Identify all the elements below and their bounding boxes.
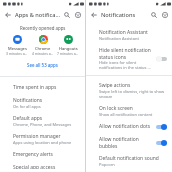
button[interactable]: On: [156, 139, 167, 146]
staticText: 7 minutes a…: [57, 51, 79, 56]
staticText: Popcorn: [99, 162, 115, 167]
button[interactable]: Off: [156, 55, 167, 62]
staticText: Notification Assistant: [99, 36, 139, 41]
staticText: Allow notification bubbles: [99, 136, 153, 149]
button[interactable]: Special app access: [0, 161, 85, 172]
staticText: Hide silent notification status icons: [99, 47, 153, 60]
staticText: On lock screen: [99, 105, 133, 112]
staticText: Notifications: [101, 11, 148, 19]
staticText: Hangouts: [59, 46, 78, 51]
staticText: Apps using location and phone: [13, 140, 72, 145]
button[interactable]: Messages: [5, 35, 29, 56]
button[interactable]: Permission manager: [0, 130, 85, 148]
staticText: Swipe actions: [99, 82, 131, 89]
button[interactable]: Default notification sound: [86, 152, 172, 170]
button[interactable]: Hide silent notification status icons: [86, 44, 172, 73]
staticText: Emergency alerts: [13, 151, 53, 158]
staticText: 4 minutes a…: [32, 51, 54, 56]
button[interactable]: Search: [148, 9, 159, 20]
staticText: Show all notification content: [99, 112, 153, 117]
staticText: Messages: [8, 46, 27, 51]
staticText: Permission manager: [13, 133, 61, 140]
staticText: Special app access: [13, 164, 56, 169]
staticText: Hide icons for silent notifications in t…: [99, 60, 153, 70]
staticText: 3 minutes a…: [6, 51, 28, 56]
staticText: See all 53 apps: [27, 62, 58, 68]
button[interactable]: Help: [72, 9, 83, 20]
button[interactable]: Notification Assistant: [86, 26, 172, 44]
button[interactable]: See all 53 apps: [0, 61, 85, 69]
button[interactable]: On: [156, 123, 167, 130]
button[interactable]: Back: [2, 9, 13, 20]
button[interactable]: Search: [61, 9, 72, 20]
button[interactable]: Chrome: [31, 35, 55, 56]
staticText: Notifications: [13, 97, 43, 104]
staticText: Default notification sound: [99, 155, 159, 162]
staticText: On for all apps: [13, 104, 41, 109]
staticText: Allow notification dots: [99, 123, 151, 130]
staticText: Recently opened apps: [20, 25, 66, 31]
staticText: Time spent in apps: [13, 84, 57, 91]
staticText: Apps & notifications: [15, 11, 61, 19]
button[interactable]: Swipe actions: [86, 79, 172, 102]
button[interactable]: Hangouts: [56, 35, 80, 56]
button[interactable]: Help: [159, 9, 170, 20]
button[interactable]: Emergency alerts: [0, 148, 85, 161]
button[interactable]: Allow notification dots: [86, 120, 172, 133]
button[interactable]: Allow notification bubbles: [86, 133, 172, 152]
button[interactable]: Notifications: [0, 94, 85, 112]
staticText: Chrome: [35, 46, 51, 51]
button[interactable]: Back: [88, 9, 99, 20]
staticText: Notification Assistant: [99, 29, 148, 36]
button[interactable]: On lock screen: [86, 102, 172, 120]
button[interactable]: Default apps: [0, 112, 85, 130]
staticText: Chrome, Phone, and Messages: [13, 122, 72, 127]
staticText: Swipe left to dismiss, right to show sno…: [99, 89, 167, 99]
button[interactable]: Time spent in apps: [0, 81, 85, 94]
staticText: Default apps: [13, 115, 43, 122]
